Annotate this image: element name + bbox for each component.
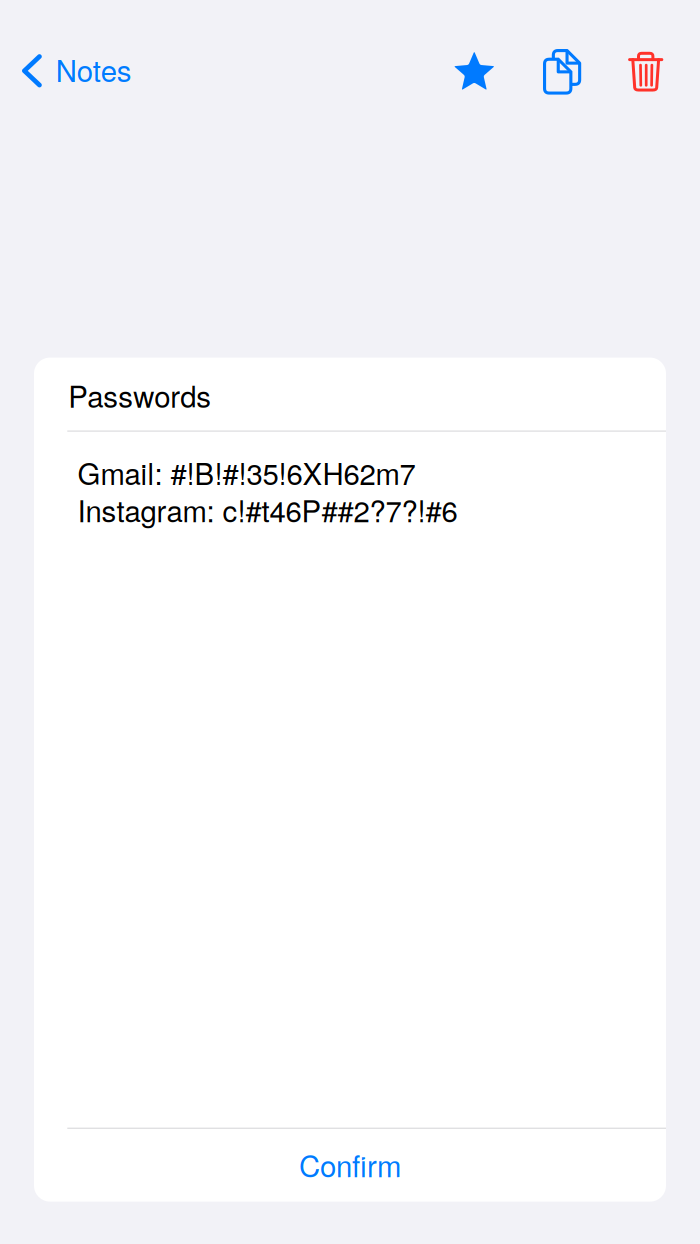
button[interactable]: Duplicate [527,41,598,105]
staticText: Confirm [299,1143,401,1185]
staticText: Passwords [68,374,211,416]
button[interactable]: Favorite [438,43,511,98]
staticText: Gmail: #!B!#!35!6XH62m7 [78,451,416,493]
staticText: Instagram: c!#t46P##2?7?!#6 [78,489,458,531]
staticText: Notes [56,48,132,90]
button[interactable]: Delete [612,44,679,99]
button[interactable]: Notes [0,41,148,97]
button[interactable]: Confirm [34,1129,666,1202]
